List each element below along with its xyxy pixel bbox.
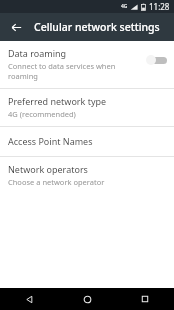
button[interactable]: Home bbox=[58, 288, 116, 310]
staticText: Choose a network operator bbox=[8, 177, 105, 187]
button[interactable]: Back bbox=[5, 16, 27, 38]
staticText: Network operators bbox=[8, 163, 88, 175]
staticText: Data roaming bbox=[8, 47, 67, 59]
staticText: Preferred network type bbox=[8, 95, 107, 107]
button[interactable]: Recent apps bbox=[116, 288, 174, 310]
staticText: roaming bbox=[8, 71, 38, 81]
staticText: 4G (recommended) bbox=[8, 109, 76, 119]
button[interactable]: Back bbox=[0, 288, 58, 310]
button[interactable]: Network operators bbox=[0, 157, 174, 194]
button[interactable]: Preferred network type bbox=[0, 89, 174, 126]
staticText: 4G bbox=[121, 3, 128, 10]
button[interactable]: Data roaming toggle bbox=[146, 53, 168, 67]
staticText: 11:28 bbox=[149, 1, 170, 12]
staticText: Connect to data services when bbox=[8, 61, 116, 71]
staticText: Access Point Names bbox=[8, 135, 93, 147]
staticText: Cellular network settings bbox=[34, 20, 160, 34]
button[interactable]: Data roaming bbox=[0, 41, 174, 88]
button[interactable]: Access Point Names bbox=[0, 127, 174, 156]
